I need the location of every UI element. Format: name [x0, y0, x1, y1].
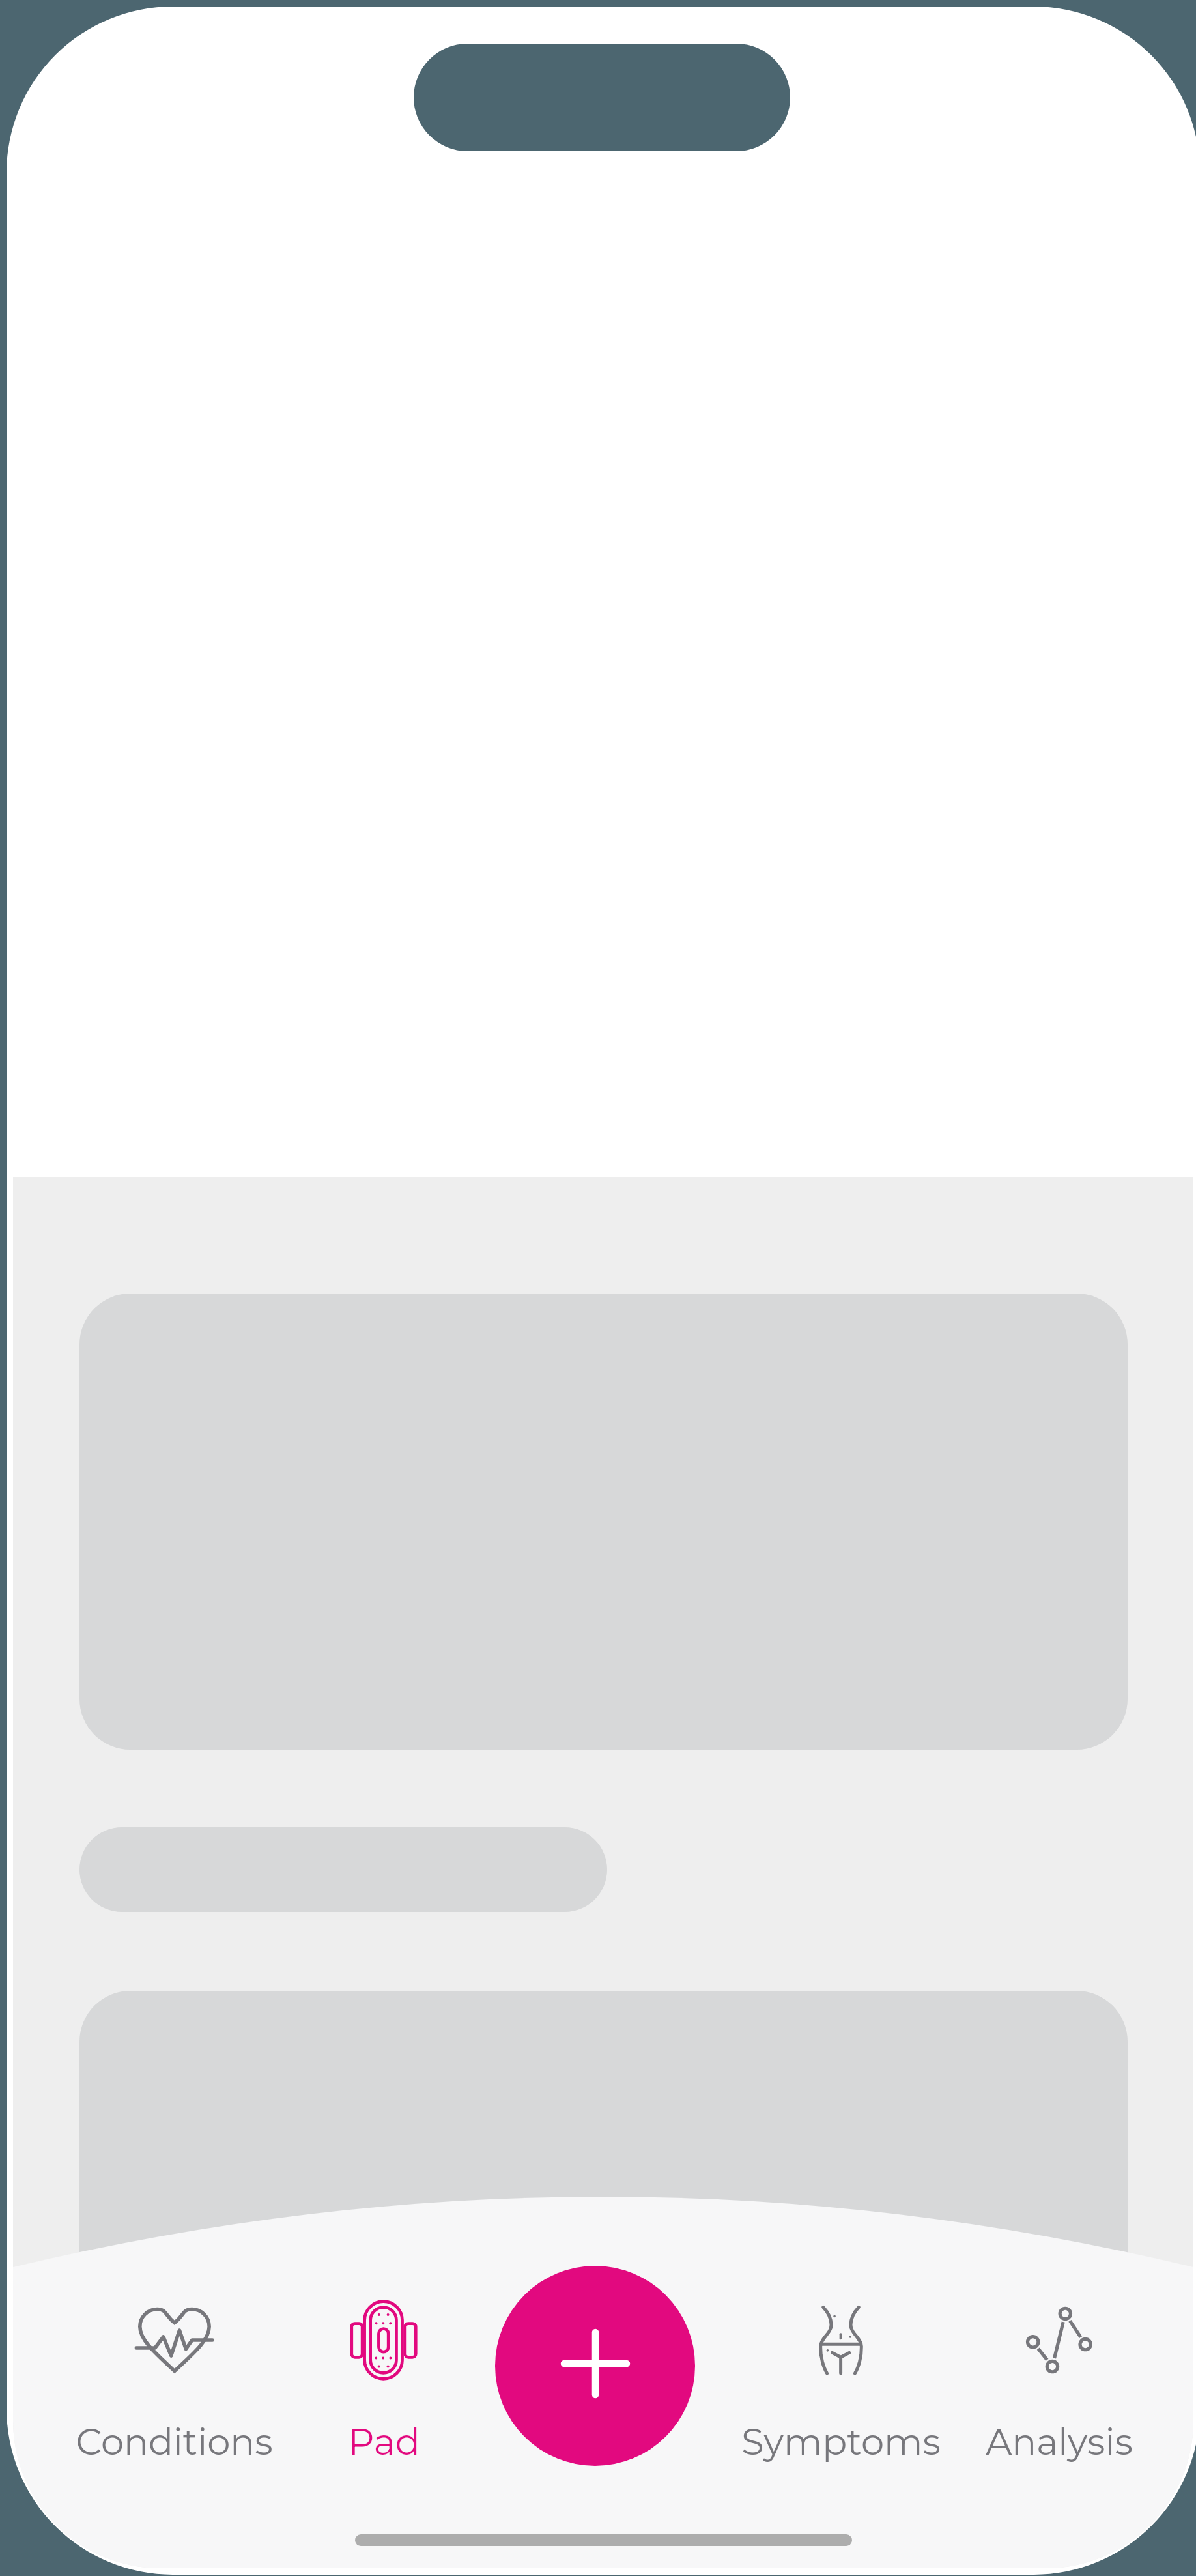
button[interactable]: Conditions — [37, 2284, 311, 2464]
button[interactable]: Pad — [247, 2284, 520, 2464]
staticText: Analysis — [986, 2420, 1133, 2464]
staticText: Pad — [348, 2420, 420, 2464]
staticText: Conditions — [76, 2420, 273, 2464]
button[interactable]: Symptoms — [704, 2284, 978, 2464]
button[interactable]: Analysis — [922, 2284, 1193, 2464]
button[interactable]: Add entry — [495, 2266, 695, 2466]
staticText: Symptoms — [741, 2420, 941, 2464]
